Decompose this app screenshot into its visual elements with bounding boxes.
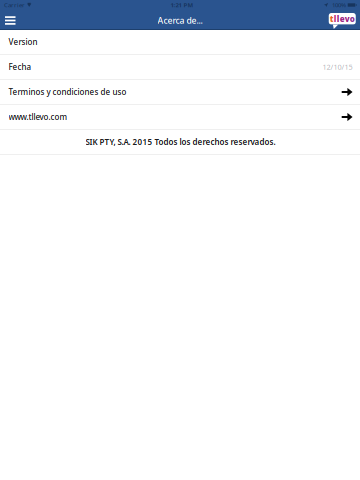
- staticText: Version: [8, 37, 37, 47]
- button[interactable]: Fecha: [0, 55, 360, 80]
- button[interactable]: www.tllevo.com: [0, 105, 360, 130]
- button[interactable]: Terminos y condiciones de uso: [0, 80, 360, 105]
- staticText: SIK PTY, S.A. 2015 Todos los derechos re…: [85, 137, 275, 147]
- staticText: Carrier: [4, 1, 25, 9]
- staticText: 100%: [332, 1, 346, 9]
- staticText: t: [330, 13, 334, 24]
- staticText: l: [334, 13, 337, 24]
- staticText: 1:21 PM: [170, 1, 193, 9]
- button[interactable]: Version: [0, 30, 360, 55]
- staticText: Terminos y condiciones de uso: [8, 87, 126, 97]
- staticText: www.tllevo.com: [8, 112, 67, 122]
- staticText: o: [350, 13, 355, 24]
- staticText: Fecha: [8, 62, 31, 72]
- staticText: Acerca de...: [157, 15, 202, 26]
- staticText: 12/10/15: [322, 62, 352, 72]
- staticText: lev: [337, 13, 350, 24]
- button[interactable]: tllevo: [328, 13, 360, 30]
- button[interactable]: Menu: [0, 11, 26, 30]
